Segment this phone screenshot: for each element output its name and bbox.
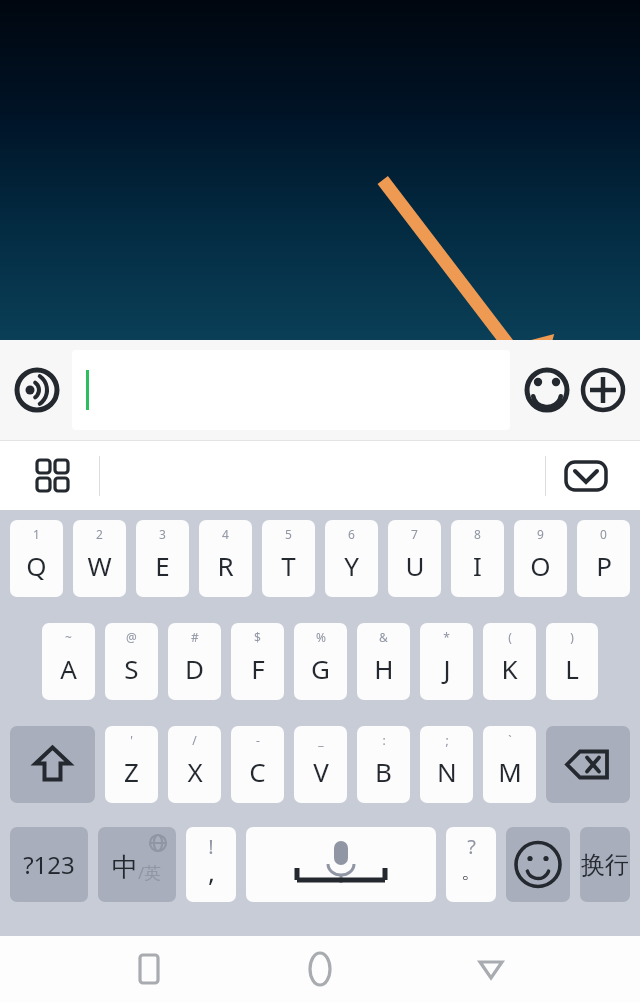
staticText: 换行 [581, 850, 629, 880]
staticText: 6 [348, 526, 355, 542]
staticText: U [405, 548, 425, 583]
button[interactable]: 9 [514, 520, 567, 597]
staticText: C [249, 754, 266, 789]
staticText: G [311, 651, 330, 686]
staticText: F [251, 651, 265, 686]
staticText: : [382, 732, 386, 748]
button[interactable]: Recents [127, 947, 171, 991]
button[interactable]: % [294, 623, 347, 700]
staticText: ?123 [23, 848, 75, 881]
staticText: D [185, 651, 204, 686]
button[interactable]: Emoji [524, 367, 570, 413]
staticText: ) [570, 629, 574, 645]
button[interactable]: Hide keyboard [564, 454, 608, 498]
staticText: S [124, 651, 139, 686]
staticText: 8 [474, 526, 481, 542]
button[interactable]: 换行 [580, 827, 630, 902]
button[interactable]: _ [294, 726, 347, 803]
staticText: 0 [600, 526, 607, 542]
button[interactable]: ) [546, 623, 598, 700]
button[interactable]: # [168, 623, 221, 700]
staticText: K [501, 651, 518, 686]
staticText: W [87, 548, 112, 583]
button[interactable]: More options [580, 367, 626, 413]
staticText: 4 [222, 526, 229, 542]
button[interactable]: ( [483, 623, 536, 700]
button[interactable]: 6 [325, 520, 378, 597]
button[interactable] [72, 350, 510, 430]
button[interactable]: * [420, 623, 473, 700]
staticText: V [313, 754, 329, 789]
staticText: A [60, 651, 77, 686]
staticText: 中 [112, 851, 138, 884]
button[interactable]: ~ [42, 623, 95, 700]
staticText: B [375, 754, 392, 789]
button[interactable]: & [357, 623, 410, 700]
staticText: 7 [411, 526, 418, 542]
staticText: _ [318, 732, 324, 748]
button[interactable]: - [231, 726, 284, 803]
button[interactable]: : [357, 726, 410, 803]
staticText: 5 [285, 526, 292, 542]
button[interactable]: Shift [10, 726, 95, 803]
staticText: Z [124, 754, 139, 789]
staticText: /英 [138, 861, 162, 884]
staticText: Q [26, 548, 47, 583]
staticText: * [443, 629, 450, 645]
button[interactable]: Emoji keyboard [506, 827, 570, 902]
staticText: ? [467, 833, 476, 860]
staticText: # [191, 629, 199, 645]
staticText: E [155, 548, 170, 583]
staticText: P [596, 548, 612, 583]
button[interactable]: ?123 [10, 827, 88, 902]
staticText: ' [130, 732, 133, 748]
button[interactable]: ? [446, 827, 496, 902]
button[interactable]: 7 [388, 520, 441, 597]
staticText: I [473, 548, 482, 583]
staticText: ~ [65, 629, 72, 645]
staticText: N [437, 754, 457, 789]
button[interactable]: Home [298, 947, 342, 991]
button[interactable]: 4 [199, 520, 252, 597]
staticText: ( [508, 629, 512, 645]
staticText: ; [445, 732, 449, 748]
button[interactable]: 3 [136, 520, 189, 597]
staticText: ! [208, 833, 214, 860]
button[interactable]: 8 [451, 520, 504, 597]
staticText: M [498, 754, 522, 789]
staticText: ` [508, 732, 512, 748]
staticText: , [208, 854, 215, 889]
button[interactable]: ' [105, 726, 158, 803]
button[interactable]: Switch language [98, 827, 176, 902]
button[interactable]: Back [469, 947, 513, 991]
staticText: 2 [96, 526, 103, 542]
staticText: L [565, 651, 579, 686]
button[interactable]: 2 [73, 520, 126, 597]
button[interactable]: ; [420, 726, 473, 803]
button[interactable]: Space [246, 827, 436, 902]
staticText: / [192, 732, 197, 748]
button[interactable]: @ [105, 623, 158, 700]
staticText: H [374, 651, 394, 686]
staticText: J [443, 651, 451, 686]
staticText: 9 [537, 526, 544, 542]
staticText: Y [344, 548, 359, 583]
button[interactable]: ` [483, 726, 536, 803]
button[interactable]: Voice message [14, 367, 60, 413]
button[interactable]: $ [231, 623, 284, 700]
button[interactable]: Backspace [546, 726, 630, 803]
staticText: R [217, 548, 234, 583]
staticText: O [530, 548, 551, 583]
button[interactable]: Apps [33, 456, 73, 496]
button[interactable]: ! [186, 827, 236, 902]
staticText: % [316, 629, 326, 645]
button[interactable]: 0 [577, 520, 630, 597]
staticText: $ [254, 629, 261, 645]
staticText: 3 [159, 526, 166, 542]
button[interactable]: 5 [262, 520, 315, 597]
staticText: - [256, 732, 260, 748]
staticText: 1 [33, 526, 40, 542]
button[interactable]: 1 [10, 520, 63, 597]
staticText: & [379, 629, 388, 645]
button[interactable]: / [168, 726, 221, 803]
